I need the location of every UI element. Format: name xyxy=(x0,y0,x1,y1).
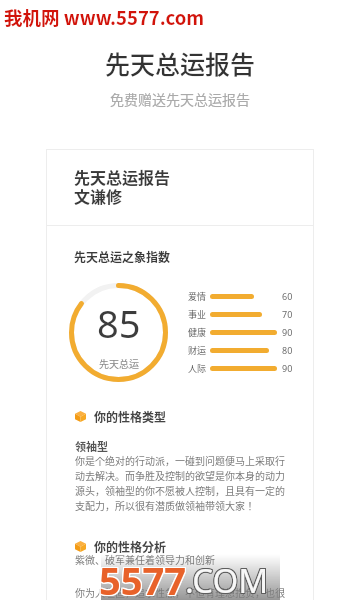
other: Section marker xyxy=(75,411,86,422)
staticText: 5577 xyxy=(99,554,186,600)
staticText: 5577 xyxy=(98,553,185,600)
staticText: 人际 xyxy=(188,362,210,375)
staticText: .COM xyxy=(185,558,269,600)
staticText: 紫微、破军兼任着领导力和创新 xyxy=(75,552,289,566)
staticText: 你的性格类型 xyxy=(94,408,167,425)
staticText: .COM xyxy=(186,558,270,600)
staticText: .COM xyxy=(186,557,270,600)
staticText: 80 xyxy=(282,344,293,356)
staticText: .COM xyxy=(184,557,268,600)
staticText: 领袖型 xyxy=(75,438,108,454)
staticText: 5577 xyxy=(100,553,187,600)
staticText: 你的性格分析 xyxy=(94,538,167,555)
staticText: 90 xyxy=(282,362,293,374)
staticText: .COM xyxy=(185,559,269,600)
staticText: 健康 xyxy=(188,326,210,339)
staticText: 先天总运 xyxy=(99,356,139,370)
staticText: 先天总运报告 xyxy=(74,165,171,188)
staticText: 5577 xyxy=(98,555,185,600)
staticText: 85 xyxy=(97,297,141,349)
staticText: 60 xyxy=(282,290,293,302)
staticText: 文谦修 xyxy=(74,184,123,207)
staticText: .COM xyxy=(184,558,268,600)
staticText: 先天总运报告 xyxy=(0,45,360,81)
staticText: 70 xyxy=(282,308,293,320)
staticText: 免费赠送先天总运报告 xyxy=(0,89,360,109)
staticText: 你为人坦直，追求性急，不但有理想抱负，也很有冲劲 xyxy=(75,585,289,600)
staticText: 爱情 xyxy=(188,290,210,303)
staticText: .COM xyxy=(185,557,269,600)
staticText: .COM xyxy=(184,559,268,600)
staticText: 90 xyxy=(282,326,293,338)
button[interactable]: Section marker xyxy=(75,538,167,555)
staticText: 你是个绝对的行动派，一碰到问题便马上采取行动去解决。而争胜及控制的欲望是你本身的… xyxy=(75,453,289,513)
staticText: 5577 xyxy=(100,554,187,600)
staticText: 5577 xyxy=(99,555,186,600)
staticText: 事业 xyxy=(188,308,210,321)
staticText: 5577 xyxy=(100,555,187,600)
staticText: 财运 xyxy=(188,344,210,357)
staticText: .COM xyxy=(186,559,270,600)
staticText: 我机网 www.5577.com xyxy=(4,4,205,31)
button[interactable]: Section marker xyxy=(75,408,167,425)
staticText: 5577 xyxy=(98,554,185,600)
staticText: 先天总运之象指数 xyxy=(74,248,171,265)
staticText: 5577 xyxy=(99,553,186,600)
button[interactable]: 先天总运报告 xyxy=(46,149,314,600)
other: Section marker xyxy=(75,541,86,552)
